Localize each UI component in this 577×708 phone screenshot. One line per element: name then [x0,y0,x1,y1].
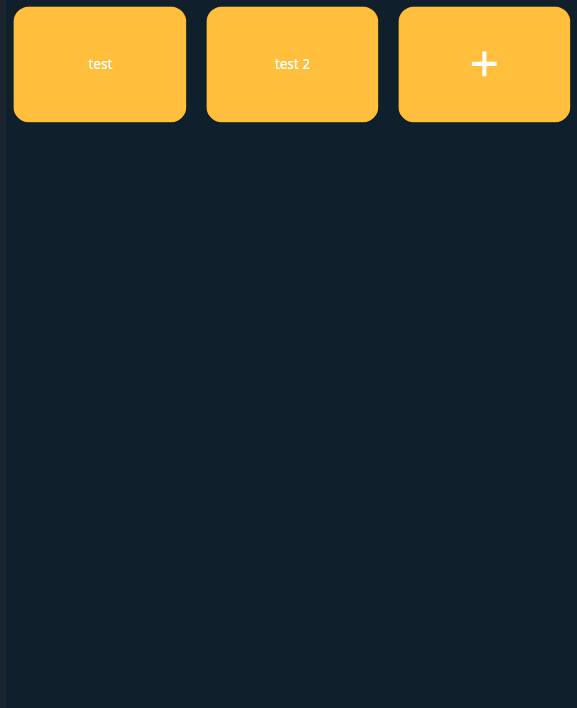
button[interactable]: test [13,6,186,122]
button[interactable]: Add [398,6,570,122]
staticText: test [88,55,112,73]
staticText: test 2 [274,55,310,73]
button[interactable]: test 2 [206,6,378,122]
